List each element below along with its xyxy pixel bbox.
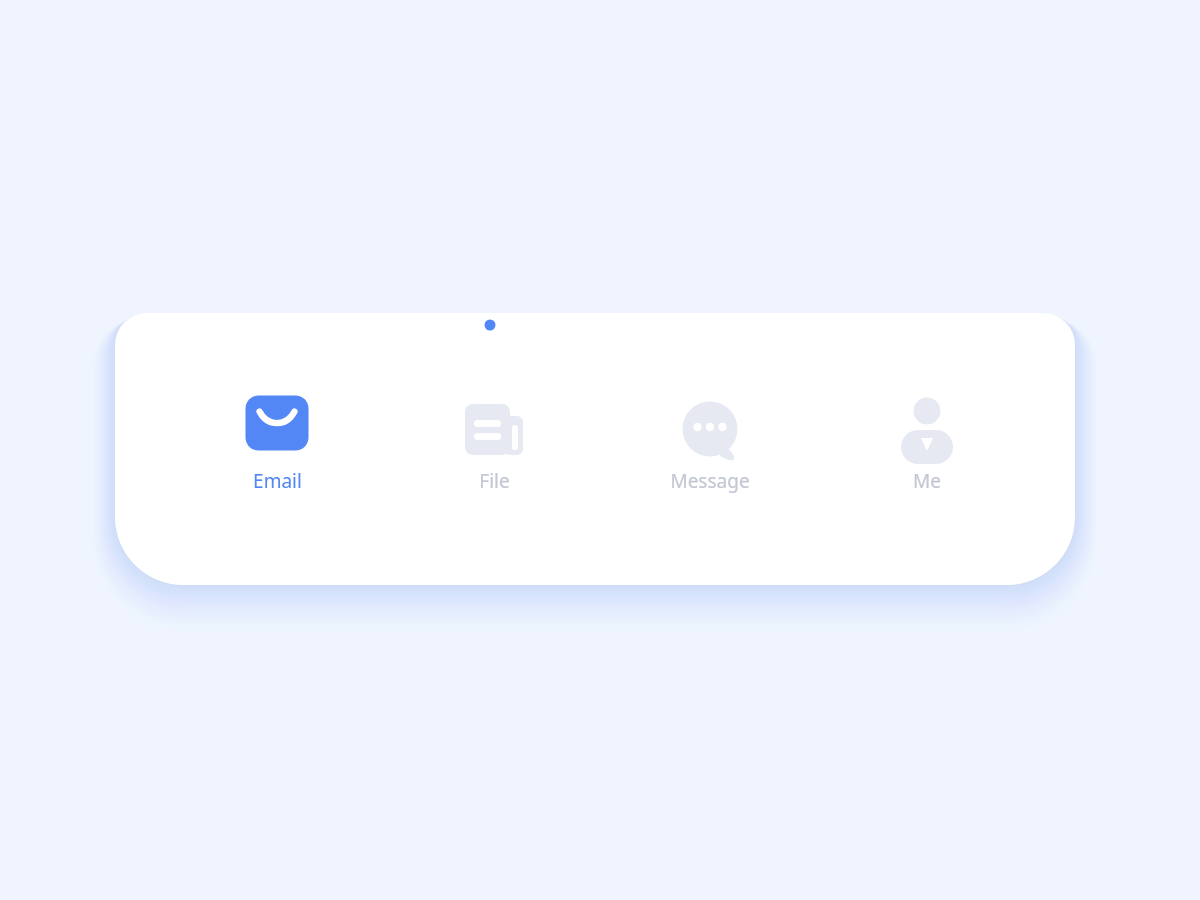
staticText: Email [253,468,302,494]
button[interactable]: File [419,396,569,514]
button[interactable]: Me [852,396,1002,514]
staticText: File [479,468,510,494]
button[interactable]: Message [635,396,785,514]
staticText: Message [670,468,750,494]
button[interactable]: Email [202,396,352,514]
staticText: Me [913,468,941,494]
